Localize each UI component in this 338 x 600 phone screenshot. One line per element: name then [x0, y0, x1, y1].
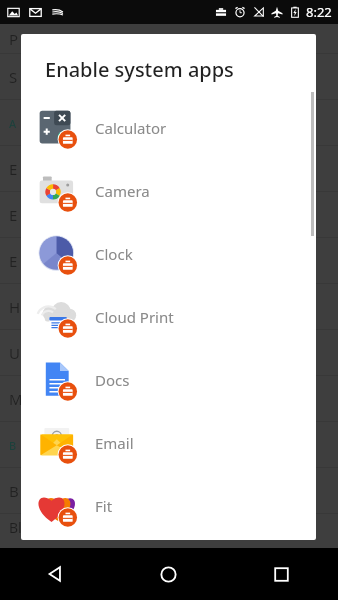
button[interactable]: S — [0, 54, 338, 100]
staticText: M — [9, 389, 23, 409]
staticText: B — [9, 438, 17, 453]
button[interactable]: U — [0, 330, 338, 376]
button[interactable]: Back — [0, 548, 112, 600]
button[interactable]: P — [0, 24, 338, 54]
staticText: Calculator — [95, 118, 167, 138]
button[interactable]: M — [0, 376, 338, 422]
button[interactable]: Recent apps — [225, 548, 338, 600]
staticText: Cloud Print — [95, 307, 174, 327]
staticText: E — [9, 159, 18, 179]
staticText: P — [9, 29, 19, 49]
button[interactable]: B — [0, 422, 338, 468]
button[interactable]: H — [0, 284, 338, 330]
staticText: A — [9, 116, 17, 131]
staticText: Camera — [95, 181, 150, 201]
staticText: Clock — [95, 244, 133, 264]
staticText: 8:22 — [306, 3, 332, 21]
staticText: Block uninstallation list — [9, 518, 161, 537]
button[interactable]: Clock — [21, 222, 316, 285]
button[interactable]: Calculator — [21, 96, 316, 159]
staticText: H — [9, 297, 21, 317]
button[interactable]: E — [0, 192, 338, 238]
button[interactable]: Docs — [21, 348, 316, 411]
staticText: Email — [95, 433, 134, 453]
staticText: U — [9, 343, 20, 363]
staticText: E — [9, 251, 18, 271]
staticText: E — [9, 205, 18, 225]
staticText: Enable system apps — [45, 56, 234, 83]
button[interactable]: E — [0, 146, 338, 192]
staticText: S — [9, 67, 18, 87]
button[interactable]: Cloud Print — [21, 285, 316, 348]
staticText: Fit — [95, 496, 113, 516]
button[interactable]: Camera — [21, 159, 316, 222]
button[interactable]: A — [0, 100, 338, 146]
button[interactable]: B — [0, 468, 338, 514]
button[interactable]: Fit — [21, 474, 316, 537]
staticText: B — [9, 481, 19, 501]
staticText: Docs — [95, 370, 130, 390]
button[interactable]: E — [0, 238, 338, 284]
button[interactable]: Home — [112, 548, 225, 600]
button[interactable]: Email — [21, 411, 316, 474]
